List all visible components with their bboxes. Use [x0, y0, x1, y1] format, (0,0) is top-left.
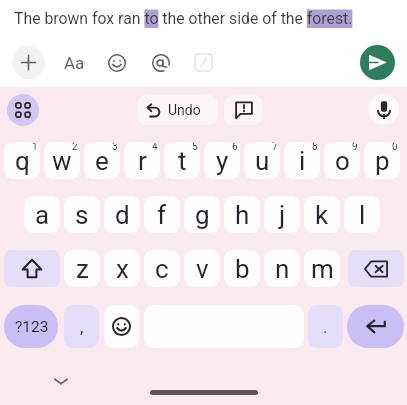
- button[interactable]: l: [344, 196, 380, 233]
- staticText: t: [178, 146, 187, 176]
- button[interactable]: Aa: [60, 48, 88, 77]
- button[interactable]: c: [144, 250, 180, 287]
- staticText: b: [235, 254, 250, 284]
- button[interactable]: t: [164, 142, 200, 179]
- button[interactable]: s: [64, 196, 100, 233]
- staticText: 0: [392, 142, 398, 153]
- staticText: q: [15, 146, 30, 176]
- button[interactable]: i: [284, 142, 320, 179]
- staticText: i: [299, 146, 306, 176]
- button[interactable]: Shift: [4, 250, 60, 287]
- button[interactable]: f: [144, 196, 180, 233]
- button[interactable]: p: [364, 142, 400, 179]
- staticText: ?123: [15, 318, 49, 336]
- staticText: .: [323, 317, 328, 337]
- staticText: n: [275, 254, 290, 284]
- button[interactable]: ?123: [4, 305, 58, 348]
- button[interactable]: h: [224, 196, 260, 233]
- button[interactable]: w: [44, 142, 80, 179]
- staticText: u: [255, 146, 270, 176]
- staticText: e: [95, 146, 109, 176]
- staticText: a: [35, 200, 50, 230]
- staticText: 1: [32, 142, 38, 153]
- staticText: m: [311, 254, 334, 284]
- button[interactable]: r: [124, 142, 160, 179]
- button[interactable]: y: [204, 142, 240, 179]
- staticText: j: [279, 200, 286, 230]
- button[interactable]: Backspace: [348, 250, 404, 287]
- button[interactable]: o: [324, 142, 360, 179]
- button[interactable]: d: [104, 196, 140, 233]
- button[interactable]: Undo: [137, 95, 218, 125]
- button[interactable]: Emoji: [104, 305, 139, 348]
- staticText: 3: [112, 142, 118, 153]
- staticText: Undo: [168, 102, 201, 118]
- staticText: 5: [192, 142, 198, 153]
- staticText: s: [75, 200, 89, 230]
- staticText: p: [375, 146, 390, 176]
- staticText: v: [196, 254, 209, 284]
- staticText: f: [157, 200, 167, 230]
- staticText: 2: [72, 142, 78, 153]
- button[interactable]: Attachment: [189, 48, 218, 77]
- button[interactable]: z: [64, 250, 100, 287]
- staticText: h: [235, 200, 250, 230]
- staticText: r: [138, 146, 147, 176]
- button[interactable]: v: [184, 250, 220, 287]
- button[interactable]: ,: [64, 305, 99, 348]
- button[interactable]: n: [264, 250, 300, 287]
- staticText: Aa: [64, 53, 85, 73]
- button[interactable]: j: [264, 196, 300, 233]
- staticText: g: [195, 200, 210, 230]
- staticText: ,: [80, 317, 84, 337]
- button[interactable]: e: [84, 142, 120, 179]
- button[interactable]: m: [304, 250, 340, 287]
- staticText: o: [335, 146, 350, 176]
- staticText: c: [155, 254, 169, 284]
- staticText: l: [359, 200, 366, 230]
- staticText: 6: [232, 142, 238, 153]
- button[interactable]: g: [184, 196, 220, 233]
- staticText: 7: [272, 142, 278, 153]
- staticText: 9: [352, 142, 358, 153]
- button[interactable]: Mention: [146, 48, 175, 77]
- staticText: x: [116, 254, 129, 284]
- button[interactable]: Send: [360, 45, 395, 80]
- button[interactable]: .: [308, 305, 343, 348]
- button[interactable]: Add: [12, 46, 45, 79]
- button[interactable]: u: [244, 142, 280, 179]
- button[interactable]: x: [104, 250, 140, 287]
- button[interactable]: Emoji: [102, 48, 131, 77]
- staticText: y: [216, 146, 229, 176]
- staticText: The brown fox ran to the other side of t…: [14, 9, 353, 28]
- staticText: z: [76, 254, 89, 284]
- staticText: 8: [312, 142, 318, 153]
- staticText: 4: [152, 142, 158, 153]
- button[interactable]: a: [24, 196, 60, 233]
- button[interactable]: Feedback: [224, 95, 263, 125]
- staticText: k: [315, 200, 329, 230]
- button[interactable]: Voice input: [368, 94, 399, 125]
- button[interactable]: Toolbar: [7, 94, 39, 126]
- staticText: w: [52, 146, 72, 176]
- staticText: d: [115, 200, 130, 230]
- button[interactable]: b: [224, 250, 260, 287]
- button[interactable]: k: [304, 196, 340, 233]
- button[interactable]: Enter: [347, 305, 404, 348]
- button[interactable]: Hide keyboard: [50, 370, 72, 392]
- button[interactable]: q: [4, 142, 40, 179]
